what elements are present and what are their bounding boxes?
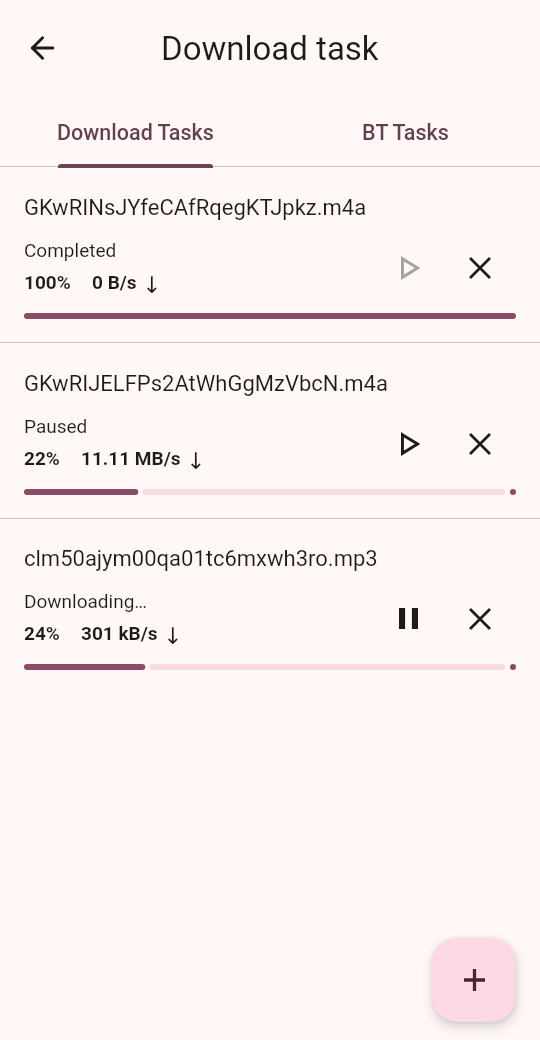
staticText: 100% xyxy=(24,271,71,293)
button[interactable]: clm50ajym00qa01tc6mxwh3ro.mp3 xyxy=(0,518,540,693)
staticText: BT Tasks xyxy=(362,120,449,145)
button[interactable]: GKwRINsJYfeCAfRqegKTJpkz.m4a xyxy=(0,167,540,342)
staticText: ↓ xyxy=(186,448,206,475)
staticText: 11.11 MB/s xyxy=(81,447,181,469)
button[interactable]: Play xyxy=(388,246,432,290)
staticText: clm50ajym00qa01tc6mxwh3ro.mp3 xyxy=(24,546,378,572)
button[interactable]: Download Tasks xyxy=(0,100,270,170)
button[interactable]: Cancel xyxy=(458,422,502,466)
staticText: Download task xyxy=(161,29,379,68)
staticText: ↓ xyxy=(142,272,162,299)
staticText: GKwRINsJYfeCAfRqegKTJpkz.m4a xyxy=(24,195,367,221)
staticText: Completed xyxy=(24,239,117,261)
button[interactable]: Pause xyxy=(388,597,432,641)
button[interactable]: Back xyxy=(18,24,66,72)
button[interactable]: Cancel xyxy=(458,597,502,641)
button[interactable]: Add download xyxy=(432,938,516,1022)
button[interactable]: BT Tasks xyxy=(270,100,540,170)
staticText: ↓ xyxy=(163,623,183,650)
staticText: Download Tasks xyxy=(57,120,214,145)
button[interactable]: GKwRIJELFPs2AtWhGgMzVbcN.m4a xyxy=(0,343,540,518)
staticText: Downloading… xyxy=(24,590,148,612)
staticText: 22% xyxy=(24,447,60,469)
staticText: 301 kB/s xyxy=(81,622,158,644)
staticText: 24% xyxy=(24,622,60,644)
staticText: 0 B/s xyxy=(92,271,137,293)
button[interactable]: Cancel xyxy=(458,246,502,290)
staticText: Paused xyxy=(24,415,88,437)
button[interactable]: Play xyxy=(388,422,432,466)
staticText: GKwRIJELFPs2AtWhGgMzVbcN.m4a xyxy=(24,371,388,397)
